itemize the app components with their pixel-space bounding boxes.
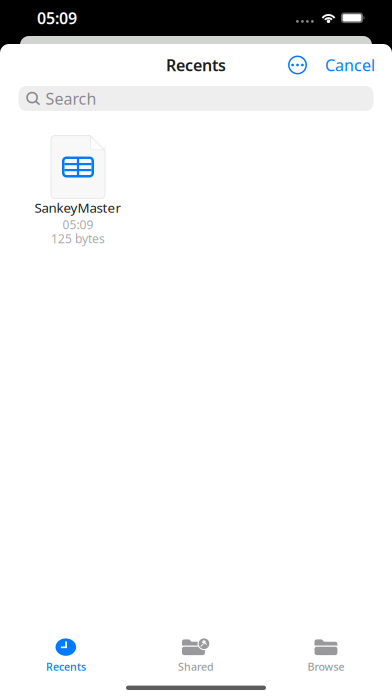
staticText: 05:09 <box>37 7 77 29</box>
staticText: 05:09 <box>62 216 93 232</box>
button[interactable]: Cancel <box>323 45 377 85</box>
staticText: Cancel <box>325 54 375 76</box>
button[interactable]: Recents <box>1 631 131 675</box>
staticText: Recents <box>46 659 86 674</box>
staticText: Shared <box>178 659 214 674</box>
staticText: 125 bytes <box>51 230 105 246</box>
staticText: Search <box>45 88 96 109</box>
button[interactable]: More options <box>282 47 313 82</box>
button[interactable]: Shared <box>131 631 261 675</box>
staticText: Browse <box>307 659 344 674</box>
button[interactable]: SankeyMaster <box>23 135 133 245</box>
staticText: SankeyMaster <box>34 199 121 216</box>
button[interactable]: Browse <box>261 631 391 675</box>
staticText: Recents <box>166 54 226 76</box>
button[interactable]: Search <box>18 86 373 111</box>
